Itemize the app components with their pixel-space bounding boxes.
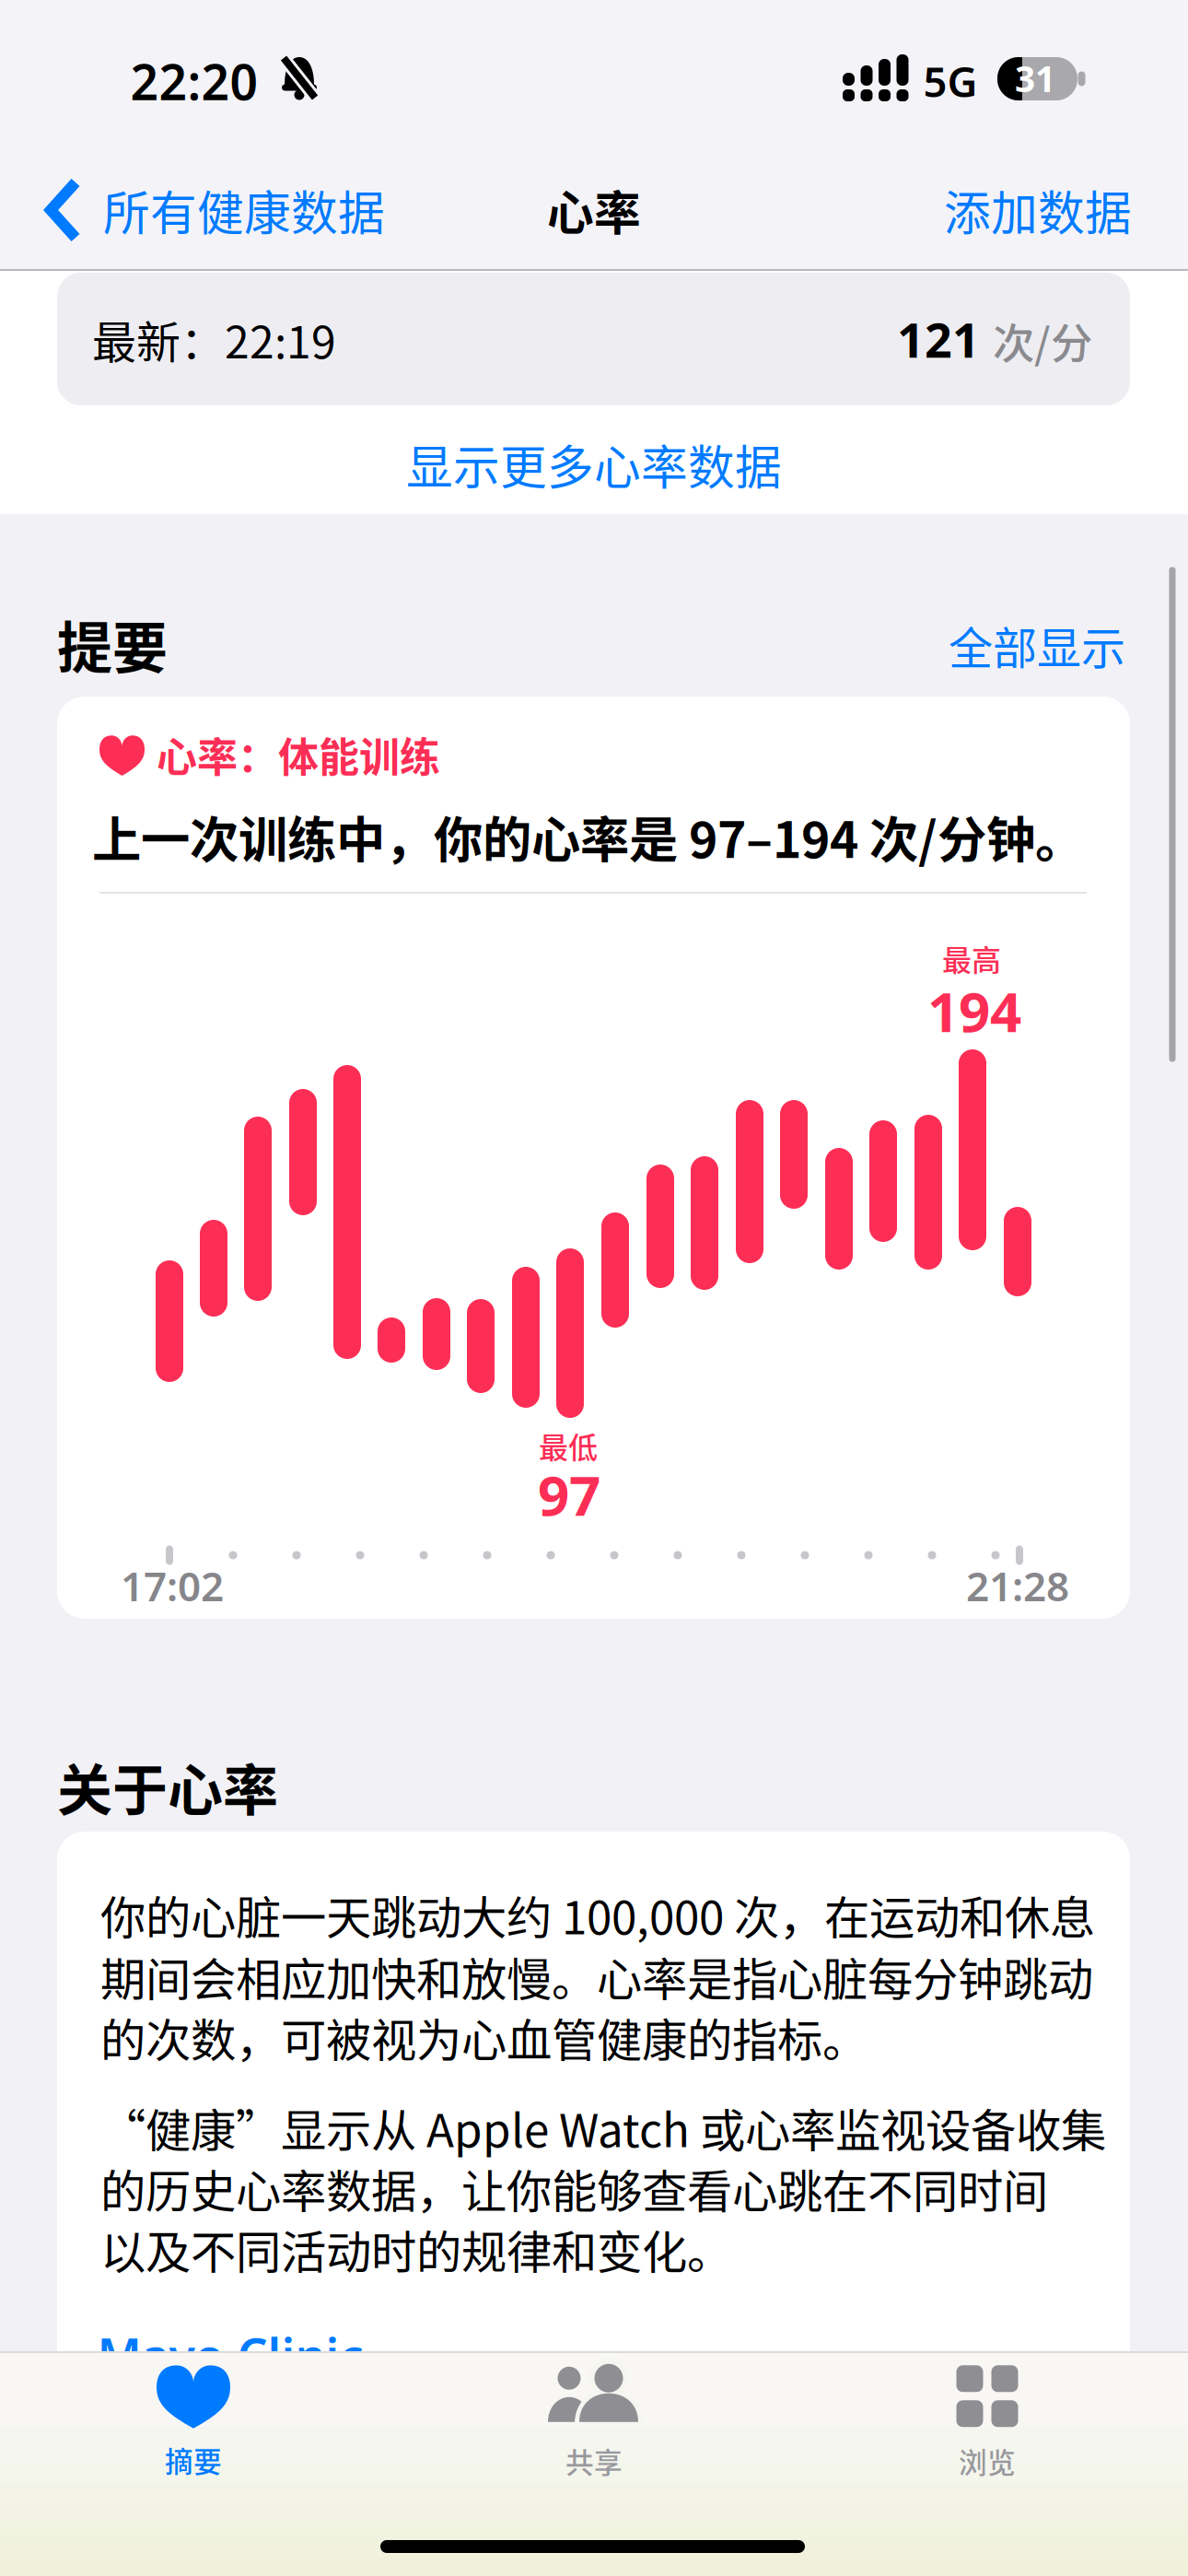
staticText: 提要 xyxy=(57,604,168,684)
staticText: 所有健康数据 xyxy=(103,176,385,244)
staticText: 5G xyxy=(923,53,978,109)
staticText: Mayo Clinic xyxy=(97,2323,363,2387)
staticText: 21:28 xyxy=(966,1559,1069,1612)
button[interactable]: 共享 xyxy=(447,2365,741,2481)
staticText: 31 xyxy=(1015,55,1055,102)
staticText: 以及不同活动时的规律和变化。 xyxy=(100,2216,732,2282)
button[interactable]: 所有健康数据 xyxy=(42,176,385,244)
button[interactable]: Mayo Clinic xyxy=(97,2323,363,2387)
staticText: 最新：22:19 xyxy=(92,307,336,371)
button[interactable]: 浏览 xyxy=(840,2365,1135,2481)
staticText: 121 xyxy=(897,307,980,371)
staticText: 关于心率 xyxy=(57,1746,278,1827)
staticText: “健康”显示从 Apple Watch 或心率监视设备收集 xyxy=(100,2094,1106,2160)
staticText: 22:20 xyxy=(130,48,258,114)
button[interactable]: 摘要 xyxy=(46,2362,341,2480)
button[interactable]: 添加数据 xyxy=(944,176,1132,244)
staticText: 97 xyxy=(538,1458,600,1531)
staticText: 摘要 xyxy=(165,2439,222,2480)
staticText: 共享 xyxy=(565,2440,623,2481)
button[interactable]: 显示更多心率数据 xyxy=(406,431,782,498)
staticText: 上一次训练中，你的心率是 97–194 次/分钟。 xyxy=(92,801,1084,872)
staticText: 添加数据 xyxy=(944,176,1132,244)
staticText: 最低 xyxy=(539,1424,598,1467)
staticText: 期间会相应加快和放慢。心率是指心脏每分钟跳动 xyxy=(100,1943,1093,2009)
staticText: 的历史心率数据，让你能够查看心跳在不同时间 xyxy=(100,2155,1048,2221)
staticText: 全部显示 xyxy=(949,613,1125,677)
staticText: 心率 xyxy=(547,176,641,244)
staticText: 显示更多心率数据 xyxy=(406,431,782,498)
button[interactable]: 心率：体能训练摘要卡片 xyxy=(57,697,1130,1619)
staticText: 次/分 xyxy=(993,311,1092,371)
staticText: 的次数，可被视为心血管健康的指标。 xyxy=(100,2004,868,2070)
staticText: 心率：体能训练 xyxy=(157,725,440,784)
staticText: 最高 xyxy=(942,937,1001,979)
staticText: 浏览 xyxy=(959,2440,1016,2481)
staticText: 你的心脏一天跳动大约 100,000 次，在运动和休息 xyxy=(100,1882,1095,1947)
staticText: 194 xyxy=(927,974,1021,1047)
button[interactable]: 全部显示 xyxy=(949,613,1125,677)
staticText: 17:02 xyxy=(121,1559,224,1612)
